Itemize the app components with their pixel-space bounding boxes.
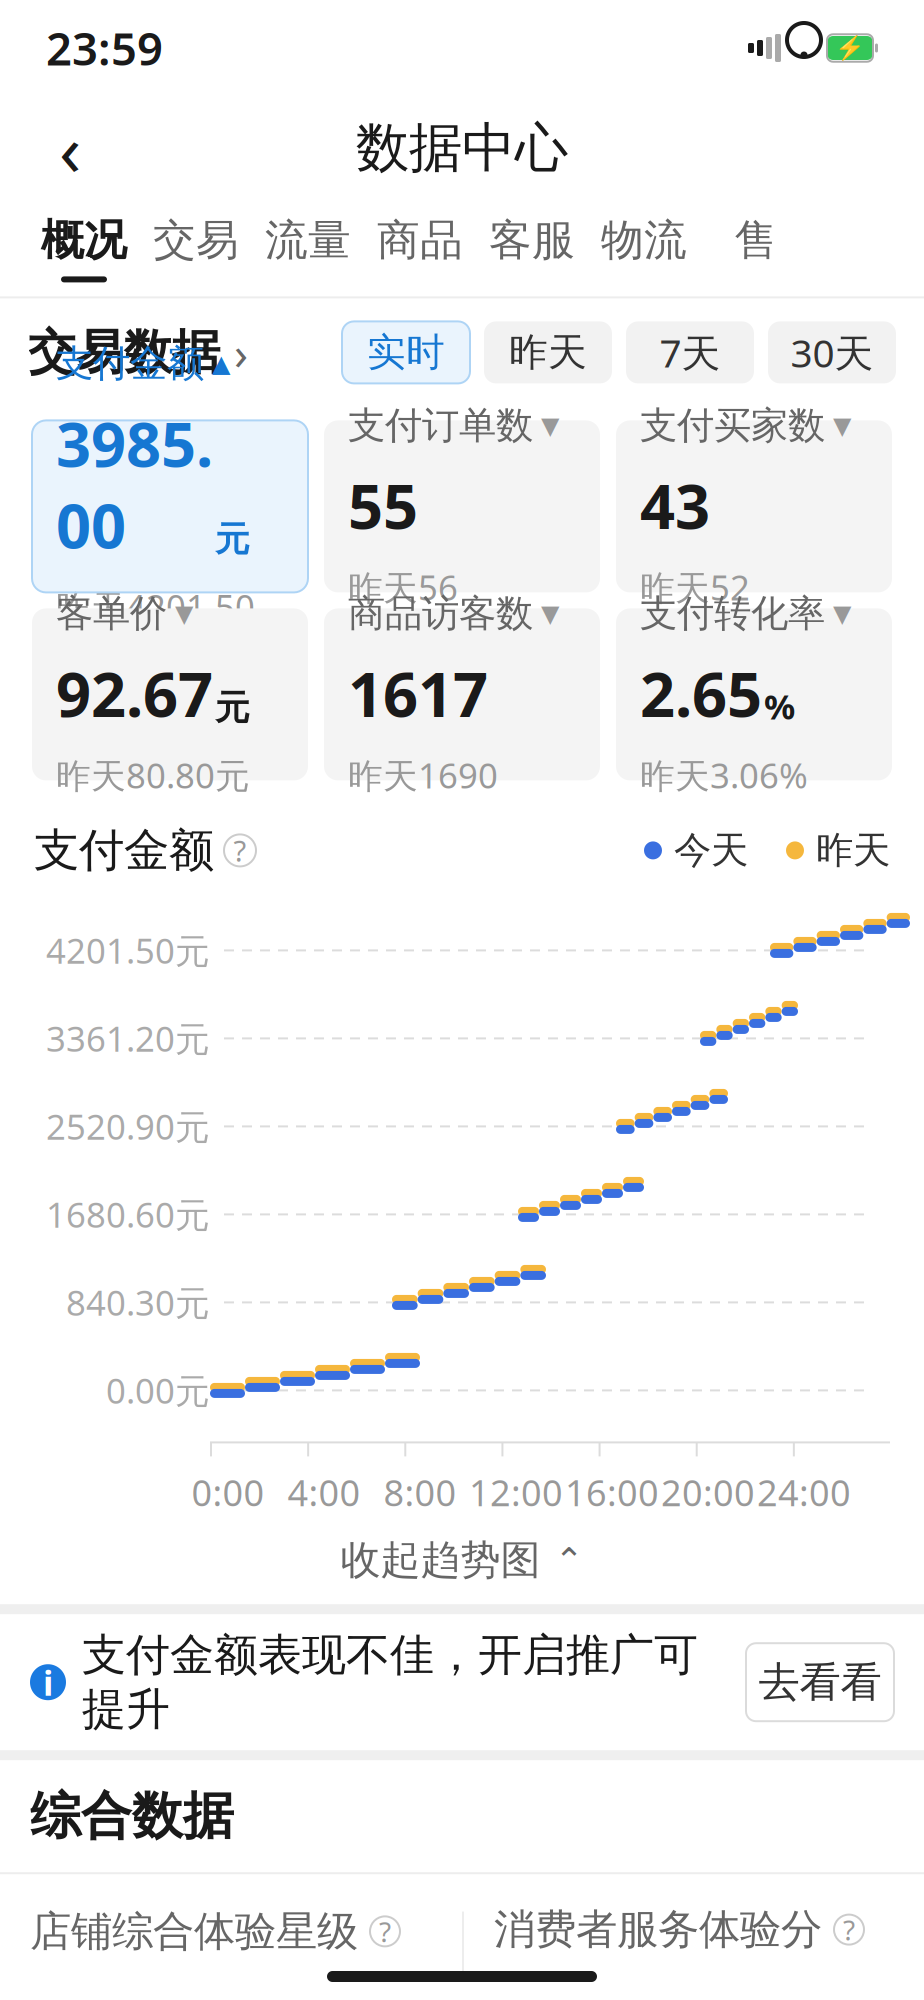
staticText: ⌃ [554, 1540, 583, 1580]
staticText: ▲ [212, 350, 230, 377]
staticText: ? [843, 1911, 855, 1948]
staticText: 2.65 [640, 653, 762, 734]
staticText: ▼ [833, 412, 851, 439]
staticText: 20:00 [661, 1468, 755, 1516]
staticText: 支付金额 [56, 341, 204, 387]
staticText: 8:00 [383, 1468, 456, 1516]
staticText: 30天 [790, 327, 873, 378]
staticText: ▼ [541, 412, 559, 439]
button[interactable]: 店铺综合体验星级 [0, 1876, 462, 2000]
staticText: 去看看 [758, 1657, 881, 1708]
button[interactable]: 返回 [30, 108, 110, 188]
button[interactable]: 7天 [626, 321, 754, 383]
button[interactable]: 交易 [140, 200, 252, 296]
staticText: 元 [215, 686, 250, 729]
staticText: 92.67 [56, 653, 213, 734]
staticText: i [43, 1659, 53, 1705]
staticText: 物流 [601, 214, 687, 266]
button[interactable]: 实时 [342, 321, 470, 383]
staticText: 0.00元 [106, 1367, 210, 1413]
staticText: 840.30元 [66, 1279, 210, 1325]
staticText: 元 [215, 518, 250, 560]
staticText: 4:00 [287, 1468, 360, 1516]
button[interactable]: 售 [700, 200, 812, 296]
button[interactable]: 交易数据 [28, 322, 248, 382]
staticText: 0:00 [191, 1468, 264, 1516]
staticText: 昨天52 [640, 564, 750, 610]
button[interactable]: 客服 [476, 200, 588, 296]
staticText: 3985.00 [56, 403, 213, 565]
staticText: 昨天 [816, 827, 890, 873]
staticText: ▼ [833, 600, 851, 627]
staticText: ⚡ [835, 34, 865, 62]
button[interactable]: 支付订单数 [324, 420, 600, 592]
staticText: 收起趋势图 [340, 1536, 540, 1585]
staticText: 7天 [659, 327, 720, 378]
staticText: 昨天3.06% [640, 752, 808, 798]
staticText: 24:00 [757, 1468, 851, 1516]
staticText: 支付金额 [34, 823, 214, 878]
staticText: 1680.60元 [46, 1191, 210, 1237]
staticText: 23:59 [46, 18, 163, 78]
button[interactable]: 物流 [588, 200, 700, 296]
staticText: 实时 [367, 329, 445, 376]
staticText: 售 [734, 214, 777, 266]
button[interactable]: 客单价 [32, 608, 308, 780]
staticText: 综合数据 [30, 1785, 234, 1847]
staticText: 昨天56 [348, 564, 458, 610]
staticText: ? [233, 831, 246, 870]
button[interactable]: 收起趋势图 [0, 1516, 924, 1604]
staticText: ‹ [59, 100, 81, 196]
staticText: 昨天80.80元 [56, 752, 250, 798]
staticText: 昨天1690 [348, 752, 498, 798]
staticText: 店铺综合体验星级 [30, 1906, 358, 1957]
staticText: 1617 [348, 653, 488, 734]
staticText: 12:00 [469, 1468, 563, 1516]
staticText: 支付转化率 [640, 591, 825, 637]
staticText: 4201.50元 [46, 927, 210, 973]
staticText: 消费者服务体验分 [494, 1904, 822, 1955]
staticText: 43 [640, 465, 710, 546]
button[interactable]: 去看看 [746, 1643, 894, 1721]
staticText: 流量 [265, 214, 351, 266]
staticText: 3361.20元 [46, 1015, 210, 1061]
staticText: 概况 [41, 214, 127, 266]
staticText: 支付买家数 [640, 403, 825, 449]
staticText: 昨天4201.50元 [56, 583, 255, 672]
staticText: % [764, 683, 795, 729]
staticText: 昨天 [509, 329, 587, 376]
button[interactable]: 支付转化率 [616, 608, 892, 780]
staticText: 商品 [377, 214, 463, 266]
staticText: 数据中心 [356, 115, 568, 181]
staticText: 今天 [674, 827, 748, 873]
staticText: 交易数据 [28, 323, 220, 382]
staticText: › [234, 322, 248, 382]
staticText: 客服 [489, 214, 575, 266]
staticText: ? [379, 1913, 391, 1950]
staticText: 商品访客数 [348, 591, 533, 637]
staticText: 支付金额表现不佳，开启推广可提升 [82, 1628, 698, 1736]
staticText: 2520.90元 [46, 1103, 210, 1149]
button[interactable]: 流量 [252, 200, 364, 296]
button[interactable]: 支付买家数 [616, 420, 892, 592]
button[interactable]: 商品访客数 [324, 608, 600, 780]
button[interactable]: 支付金额 [32, 420, 308, 592]
staticText: ▼ [175, 600, 193, 627]
staticText: 客单价 [56, 591, 167, 637]
staticText: 16:00 [565, 1468, 659, 1516]
button[interactable]: 30天 [768, 321, 896, 383]
button[interactable]: 概况 [28, 200, 140, 296]
staticText: 3.6 [494, 1981, 574, 2000]
staticText: ▼ [541, 600, 559, 627]
staticText: 交易 [153, 214, 239, 266]
button[interactable]: 商品 [364, 200, 476, 296]
button[interactable]: 消费者服务体验分 [464, 1874, 924, 2000]
staticText: 支付订单数 [348, 403, 533, 449]
button[interactable]: 昨天 [484, 321, 612, 383]
